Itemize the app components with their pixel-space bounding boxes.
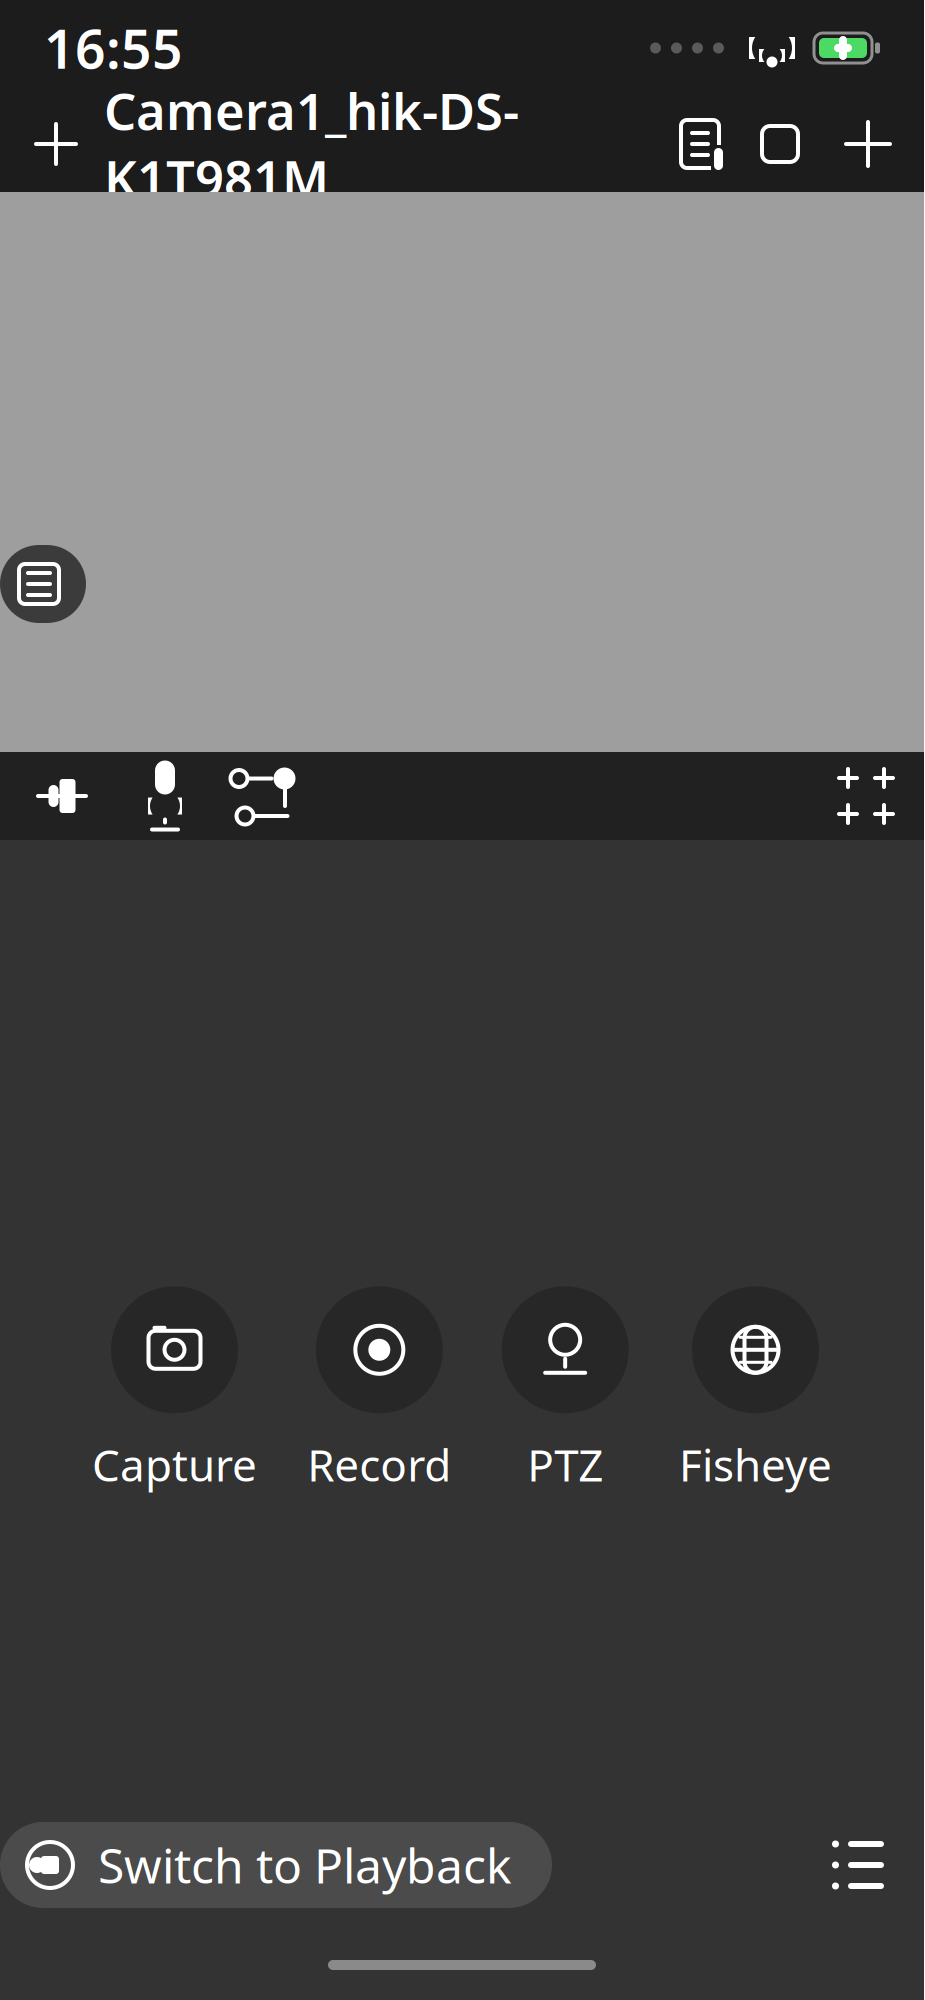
staticText: Capture (92, 1435, 257, 1494)
staticText: Fisheye (679, 1435, 832, 1494)
staticText: Camera1_hik-DS-K1T981M (104, 77, 519, 211)
button[interactable]: Close (30, 110, 82, 178)
button[interactable]: Stream info (0, 545, 86, 623)
button[interactable]: Event log (664, 115, 736, 173)
button[interactable]: Add (824, 118, 894, 170)
button[interactable]: Record (307, 1286, 451, 1494)
button[interactable]: PTZ (502, 1286, 629, 1494)
button[interactable]: Switch to Playback (0, 1822, 552, 1908)
staticText: 16:55 (44, 13, 183, 83)
button[interactable]: Mute (28, 770, 96, 822)
button[interactable]: Full screen (836, 766, 896, 826)
staticText: Record (307, 1435, 451, 1494)
button[interactable]: Device list (830, 1837, 886, 1893)
button[interactable]: Microphone (96, 767, 190, 825)
button[interactable]: Fisheye (679, 1286, 832, 1494)
staticText: Switch to Playback (98, 1833, 512, 1897)
button[interactable]: Capture (92, 1286, 257, 1494)
button[interactable]: Favorite (736, 118, 824, 170)
button[interactable]: Stream quality (190, 767, 296, 825)
staticText: PTZ (527, 1435, 603, 1494)
